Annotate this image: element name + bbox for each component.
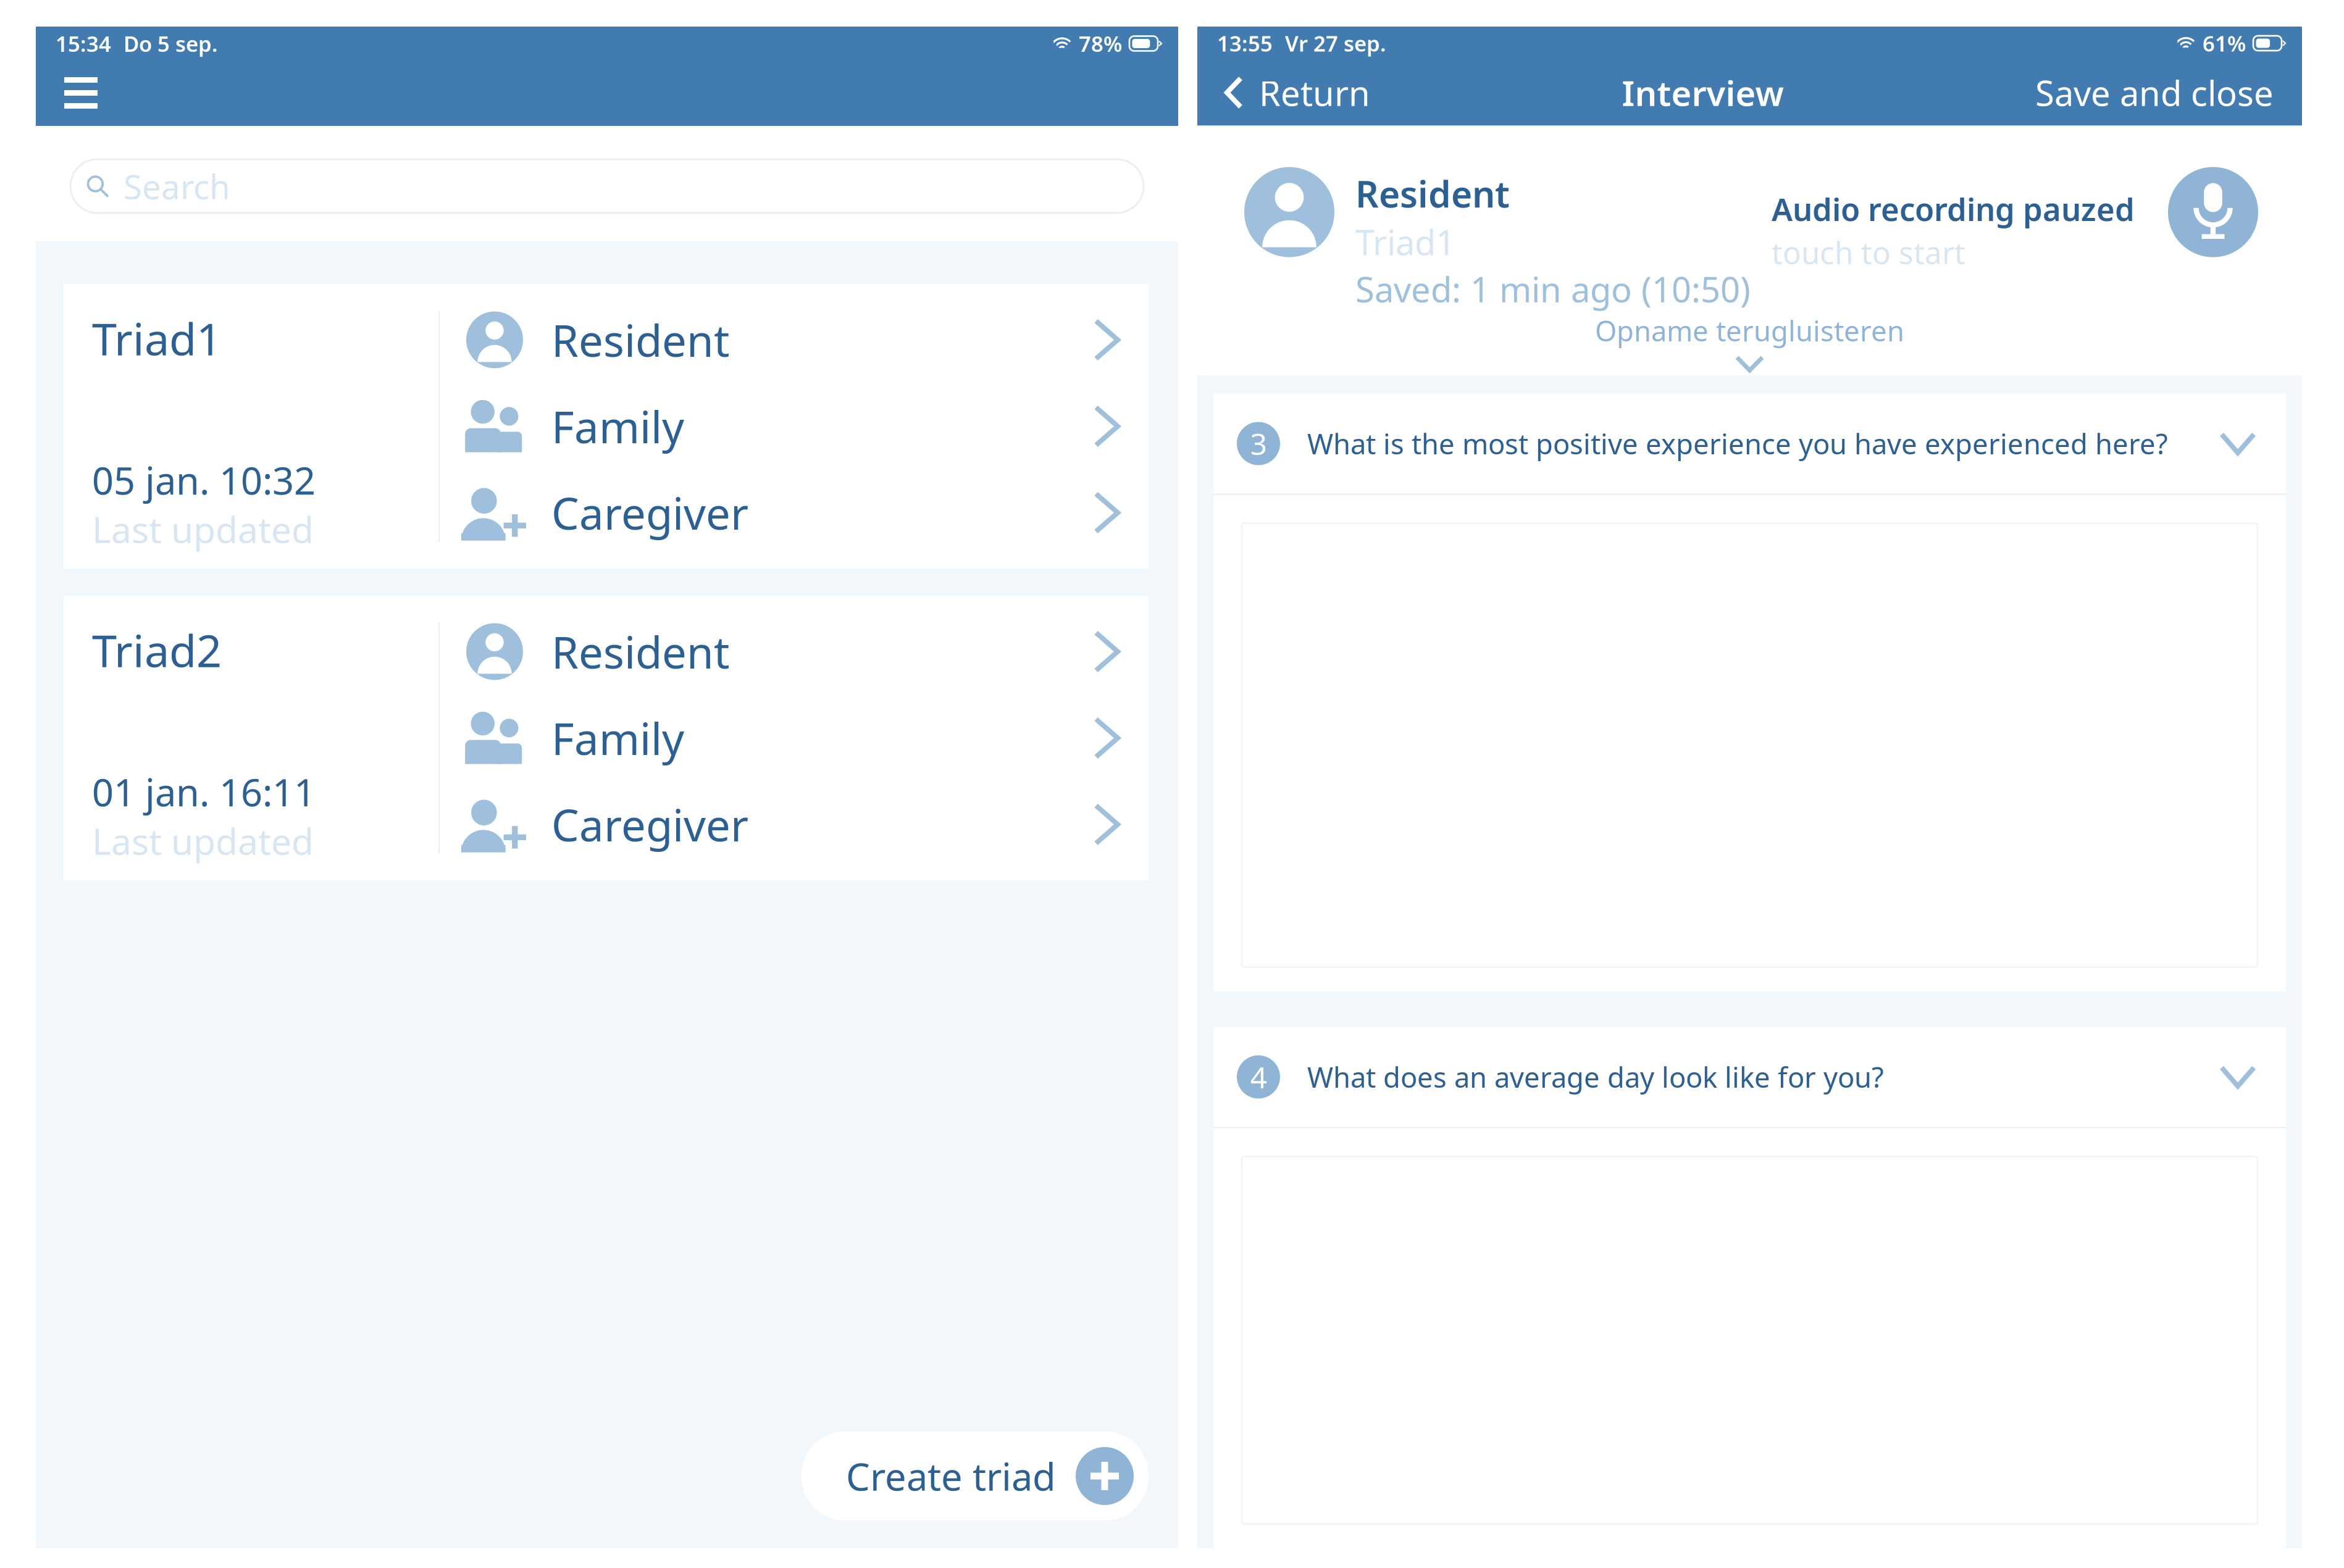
staticText: 78%	[1079, 29, 1122, 58]
staticText: Create triad	[846, 1451, 1056, 1501]
button[interactable]: Caregiver	[440, 781, 1149, 868]
button[interactable]: Resident	[440, 608, 1149, 695]
staticText: Caregiver	[551, 795, 748, 853]
button[interactable]: Record	[2168, 167, 2258, 257]
staticText: Saved: 1 min ago (10:50)	[1355, 266, 1751, 312]
button[interactable]: Caregiver	[440, 469, 1149, 556]
staticText: Search	[123, 164, 230, 209]
staticText: Resident	[1355, 170, 1510, 218]
staticText: Interview	[1622, 70, 1784, 116]
staticText: Audio recording pauzed	[1772, 188, 2135, 230]
button[interactable]: Menu	[54, 60, 107, 125]
staticText: 15:34	[56, 29, 111, 58]
staticText: Save and close	[2035, 70, 2274, 116]
button[interactable]: Opname terugluisteren	[1595, 312, 1904, 372]
staticText: 05 jan. 10:32	[92, 455, 316, 505]
staticText: What is the most positive experience you…	[1307, 425, 2168, 462]
staticText: What does an average day look like for y…	[1307, 1058, 1884, 1096]
staticText: Resident	[551, 623, 730, 681]
button[interactable]: Family	[440, 383, 1149, 469]
staticText: Family	[551, 709, 684, 767]
staticText: Opname terugluisteren	[1595, 312, 1904, 349]
staticText: 13:55	[1217, 29, 1273, 57]
button[interactable]: 3	[1213, 394, 2286, 494]
button[interactable]: Create triad	[802, 1432, 1149, 1520]
staticText: Family	[551, 397, 684, 455]
staticText: 01 jan. 16:11	[92, 766, 316, 817]
staticText: 3	[1250, 424, 1267, 463]
button[interactable]: Save and close	[2028, 61, 2281, 124]
staticText: Triad2	[92, 620, 222, 679]
staticText: 4	[1250, 1057, 1267, 1097]
staticText: Triad1	[1355, 219, 1455, 265]
button[interactable]: Return	[1217, 61, 1378, 124]
staticText: Return	[1259, 70, 1370, 116]
staticText: Caregiver	[551, 484, 748, 542]
staticText: Triad1	[92, 309, 222, 368]
staticText: 61%	[2203, 29, 2246, 57]
staticText: Resident	[551, 311, 730, 369]
button[interactable]: Family	[440, 695, 1149, 781]
staticText: Last updated	[92, 817, 314, 865]
staticText: Last updated	[92, 505, 314, 553]
staticText: Do 5 sep.	[123, 29, 218, 58]
button[interactable]: 4	[1213, 1027, 2286, 1127]
staticText: Vr 27 sep.	[1285, 29, 1386, 57]
staticText: touch to start	[1772, 232, 1965, 272]
button[interactable]: Resident	[440, 297, 1149, 383]
